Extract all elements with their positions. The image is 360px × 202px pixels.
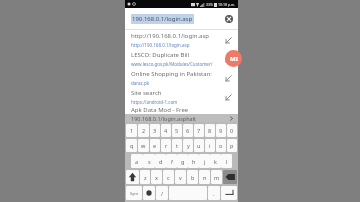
staticText: https://android-1.com (131, 99, 178, 105)
button[interactable]: Apk Data Mod - Free Download Android Gam (125, 106, 238, 114)
button[interactable]: http://190.168.0.1/login.asp (125, 30, 238, 49)
button[interactable]: Sym (126, 186, 142, 200)
staticText: w (141, 142, 146, 149)
button[interactable]: b (187, 170, 198, 184)
staticText: Apk Data Mod - Free Download Android Gam (131, 106, 218, 114)
button[interactable]: w (138, 139, 149, 152)
staticText: 6 (186, 127, 190, 134)
staticText: 190.168.0.1/login.asphalt (131, 115, 197, 122)
staticText: 190.168.0.1/login.asp (132, 15, 193, 23)
staticText: 3 (153, 127, 157, 134)
button[interactable]: q (126, 139, 137, 152)
button[interactable]: . (208, 186, 220, 200)
staticText: http://190.168.0.1/login.asp (131, 42, 190, 48)
button[interactable]: g (177, 154, 188, 168)
staticText: 0 (230, 127, 234, 134)
staticText: c (167, 174, 170, 181)
button[interactable]: 5 (172, 124, 182, 137)
staticText: 5 (175, 127, 179, 134)
button[interactable]: f (166, 154, 177, 168)
button[interactable]: 6 (183, 124, 193, 137)
button[interactable]: l (221, 154, 232, 168)
button[interactable]: j (199, 154, 210, 168)
button[interactable]: 8 (205, 124, 215, 137)
staticText: f (171, 158, 173, 165)
button[interactable]: 7 (194, 124, 204, 137)
button[interactable]: 190.168.0.1/login.asp (125, 8, 238, 29)
button[interactable]: m (211, 170, 222, 184)
staticText: g (181, 158, 185, 165)
button[interactable]: Settings (143, 186, 155, 200)
staticText: . (213, 190, 215, 197)
staticText: u (197, 142, 201, 149)
staticText: 8 (208, 127, 212, 134)
button[interactable]: p (227, 139, 237, 152)
button[interactable]: x (151, 170, 162, 184)
staticText: m (214, 174, 220, 181)
button[interactable]: 190.168.0.1/login.asphalt (125, 114, 238, 122)
button[interactable]: s (143, 154, 155, 168)
button[interactable]: 3 (150, 124, 160, 137)
button[interactable]: z (140, 170, 150, 184)
button[interactable]: n (199, 170, 210, 184)
button[interactable]: 2 (138, 124, 149, 137)
staticText: t (176, 142, 178, 149)
button[interactable]: Site search (125, 87, 238, 106)
button[interactable]: h (188, 154, 199, 168)
button[interactable]: Backspace (223, 170, 237, 184)
staticText: 4 (164, 127, 168, 134)
staticText: 10:18 p.m. (218, 2, 236, 7)
button[interactable]: Insert suggestion (223, 92, 233, 102)
staticText: z (144, 174, 147, 181)
staticText: e (153, 142, 157, 149)
button[interactable]: LESCO: Duplicate Bill (125, 49, 238, 68)
button[interactable]: Insert suggestion (223, 73, 233, 83)
staticText: q (130, 142, 134, 149)
button[interactable]: 9 (216, 124, 226, 137)
staticText: 33% (206, 2, 213, 7)
button[interactable]: 0 (227, 124, 237, 137)
button[interactable]: 4 (161, 124, 171, 137)
button[interactable]: y (183, 139, 193, 152)
button[interactable]: o (216, 139, 226, 152)
button[interactable]: v (175, 170, 186, 184)
staticText: o (219, 142, 223, 149)
staticText: daraz.pk (131, 80, 150, 86)
button[interactable]: Enter (221, 186, 237, 200)
button[interactable]: r (161, 139, 171, 152)
button[interactable]: k (210, 154, 221, 168)
staticText: 7 (197, 127, 201, 134)
staticText: n (203, 174, 207, 181)
button[interactable]: u (194, 139, 204, 152)
button[interactable]: Insert suggestion (223, 54, 233, 64)
staticText: Online Shopping in Pakistan: Fashion, El… (131, 70, 218, 78)
staticText: p (230, 142, 234, 149)
staticText: l (226, 158, 228, 165)
staticText: y (187, 142, 190, 149)
button[interactable]: Insert suggestion (223, 35, 233, 45)
staticText: Site search (131, 89, 162, 97)
button[interactable]: d (155, 154, 166, 168)
staticText: v (179, 174, 182, 181)
button[interactable]: i (205, 139, 215, 152)
button[interactable]: Shift (126, 170, 139, 184)
button[interactable]: t (172, 139, 182, 152)
staticText: LESCO: Duplicate Bill (131, 51, 190, 59)
staticText: a (135, 158, 139, 165)
staticText: MI (230, 55, 238, 63)
staticText: 1 (130, 127, 134, 134)
button[interactable]: c (163, 170, 174, 184)
button[interactable]: 1 (126, 124, 137, 137)
staticText: Sym (130, 191, 138, 196)
button[interactable]: e (150, 139, 160, 152)
staticText: s (148, 158, 151, 165)
staticText: 9 (219, 127, 223, 134)
button[interactable]: a (131, 154, 143, 168)
button[interactable]: Online Shopping in Pakistan: Fashion, El… (125, 68, 238, 87)
staticText: / (161, 190, 164, 197)
staticText: b (191, 174, 195, 181)
button[interactable]: / (156, 186, 168, 200)
button[interactable]: Clear (224, 14, 233, 23)
staticText: www.lesco.gov.pk/Modules/Customer/bill/b… (131, 61, 218, 67)
